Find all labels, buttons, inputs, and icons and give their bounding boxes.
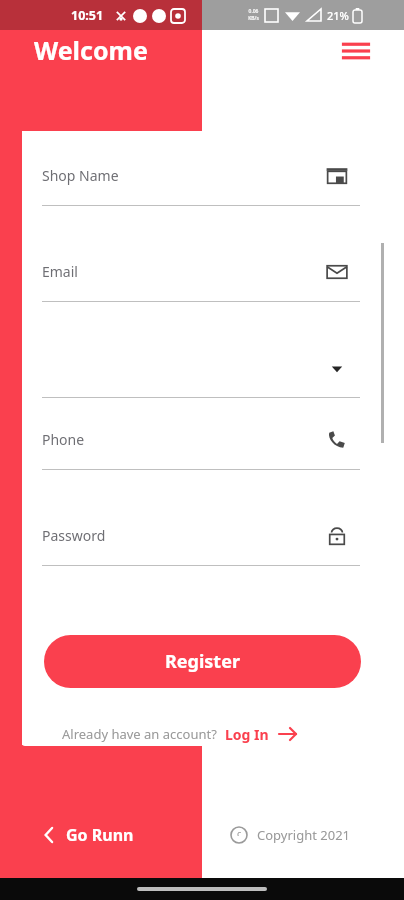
button[interactable]: Email [324, 259, 350, 285]
staticText: 0.06 KB/s [248, 8, 259, 22]
button[interactable]: Go Runn [42, 820, 134, 850]
staticText: Copyright 2021 [257, 826, 351, 844]
button[interactable]: Register [44, 635, 361, 688]
staticText: Welcome [34, 33, 148, 67]
staticText: Email [42, 262, 78, 281]
button[interactable]: Phone [324, 427, 350, 453]
button[interactable]: Shop Name [324, 163, 350, 189]
button[interactable]: Password [324, 523, 350, 549]
staticText: Already have an account? [62, 725, 217, 743]
staticText: Log In [225, 725, 269, 744]
staticText: c [237, 827, 242, 836]
button[interactable]: Menu [338, 38, 374, 64]
staticText: 21% [327, 8, 349, 23]
staticText: Shop Name [42, 166, 119, 185]
staticText: 10:51 [71, 7, 104, 24]
staticText: Register [165, 649, 240, 674]
button[interactable]: Already have an account? [62, 722, 298, 746]
staticText: Phone [42, 430, 85, 449]
staticText: Password [42, 526, 106, 545]
staticText: Go Runn [66, 824, 134, 846]
button[interactable]: Select [324, 355, 350, 381]
